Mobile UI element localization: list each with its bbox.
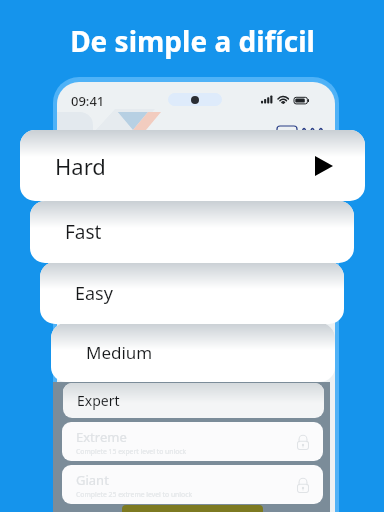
staticText: Medium xyxy=(86,341,153,364)
button[interactable]: Extreme xyxy=(62,422,323,461)
button[interactable]: Medium xyxy=(51,323,335,382)
staticText: Complete 25 extreme level to unlock xyxy=(76,490,193,499)
staticText: Easy xyxy=(75,281,113,306)
staticText: Expert xyxy=(77,391,120,410)
staticText: 09:41 xyxy=(71,92,105,110)
button[interactable]: Easy xyxy=(40,262,344,324)
other: Locked xyxy=(297,477,309,493)
button[interactable]: Hard xyxy=(20,130,365,201)
staticText: Giant xyxy=(76,471,109,489)
other: Play xyxy=(315,156,333,176)
staticText: De simple a difícil xyxy=(70,22,315,60)
staticText: Hard xyxy=(55,151,106,181)
staticText: Complete 15 expert level to unlock xyxy=(76,447,187,456)
staticText: Fast xyxy=(65,219,102,245)
staticText: Extreme xyxy=(76,428,127,446)
other: Locked xyxy=(297,434,309,450)
button[interactable]: Expert xyxy=(63,383,324,418)
button[interactable]: Fast xyxy=(30,201,354,263)
button[interactable]: Giant xyxy=(62,465,323,504)
